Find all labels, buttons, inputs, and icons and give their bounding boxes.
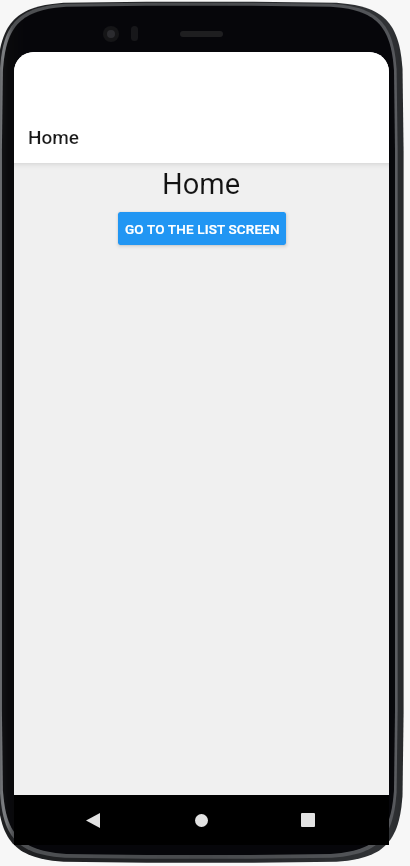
button[interactable]: Back: [55, 795, 131, 845]
button[interactable]: Home: [163, 795, 239, 845]
staticText: Home: [162, 167, 241, 201]
staticText: Home: [28, 126, 79, 148]
button[interactable]: GO TO THE LIST SCREEN: [118, 212, 286, 245]
staticText: GO TO THE LIST SCREEN: [125, 221, 280, 237]
button[interactable]: Recent apps: [270, 795, 346, 845]
